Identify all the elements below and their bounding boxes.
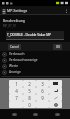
staticText: Verbrauchsanzeige [9, 58, 38, 62]
staticText: MP-Settings [7, 8, 28, 13]
staticText: Werte [9, 64, 18, 68]
button[interactable]: Symbols [9, 101, 23, 108]
staticText: 5 [28, 88, 31, 94]
button[interactable]: Home [27, 109, 43, 119]
button[interactable]: Settings [49, 101, 62, 108]
staticText: 2 [28, 81, 31, 87]
button[interactable]: 3 [36, 80, 49, 87]
button[interactable]: More options [63, 7, 70, 14]
staticText: 7 [15, 95, 18, 101]
staticText: T_DOUBLE - Double Value MP [7, 33, 52, 37]
staticText: Verbrauch [9, 52, 25, 56]
button[interactable]: 0 [23, 101, 36, 108]
staticText: Anzeige [9, 70, 21, 74]
button[interactable]: 8 [23, 94, 36, 101]
button[interactable]: Backspace [49, 80, 62, 87]
button[interactable]: Cancel [8, 44, 21, 50]
button[interactable]: 6 [36, 87, 49, 94]
staticText: 8 [28, 95, 31, 101]
staticText: OK [56, 45, 60, 49]
button[interactable]: Anzeige [1, 69, 70, 75]
button[interactable]: Navigate up [0, 7, 7, 14]
button[interactable]: Enter [49, 87, 62, 94]
button[interactable]: Werte [1, 63, 70, 69]
staticText: 4 [15, 88, 18, 94]
button[interactable]: Verbrauch [1, 51, 70, 57]
button[interactable]: Verbrauchsanzeige [1, 57, 70, 63]
button[interactable]: 1 [9, 80, 23, 87]
staticText: Cancel [10, 45, 19, 49]
button[interactable]: Space [36, 101, 49, 108]
button[interactable]: Recents [49, 109, 65, 119]
staticText: 6 [41, 88, 44, 94]
button[interactable]: T_DOUBLE - Double Value MP [6, 31, 64, 39]
staticText: 1 [15, 81, 18, 87]
button[interactable]: 4 [9, 87, 23, 94]
staticText: MP_07_01 [3, 24, 17, 28]
button[interactable]: Back [6, 109, 22, 119]
staticText: 9 [41, 95, 44, 101]
staticText: Beschreibung [3, 18, 25, 23]
button[interactable]: Next [49, 94, 62, 101]
button[interactable]: 7 [9, 94, 23, 101]
button[interactable]: 5 [23, 87, 36, 94]
button[interactable]: OK [53, 44, 62, 50]
staticText: 0 [28, 102, 31, 108]
staticText: 3 [41, 81, 44, 87]
button[interactable]: 9 [36, 94, 49, 101]
button[interactable]: 2 [23, 80, 36, 87]
